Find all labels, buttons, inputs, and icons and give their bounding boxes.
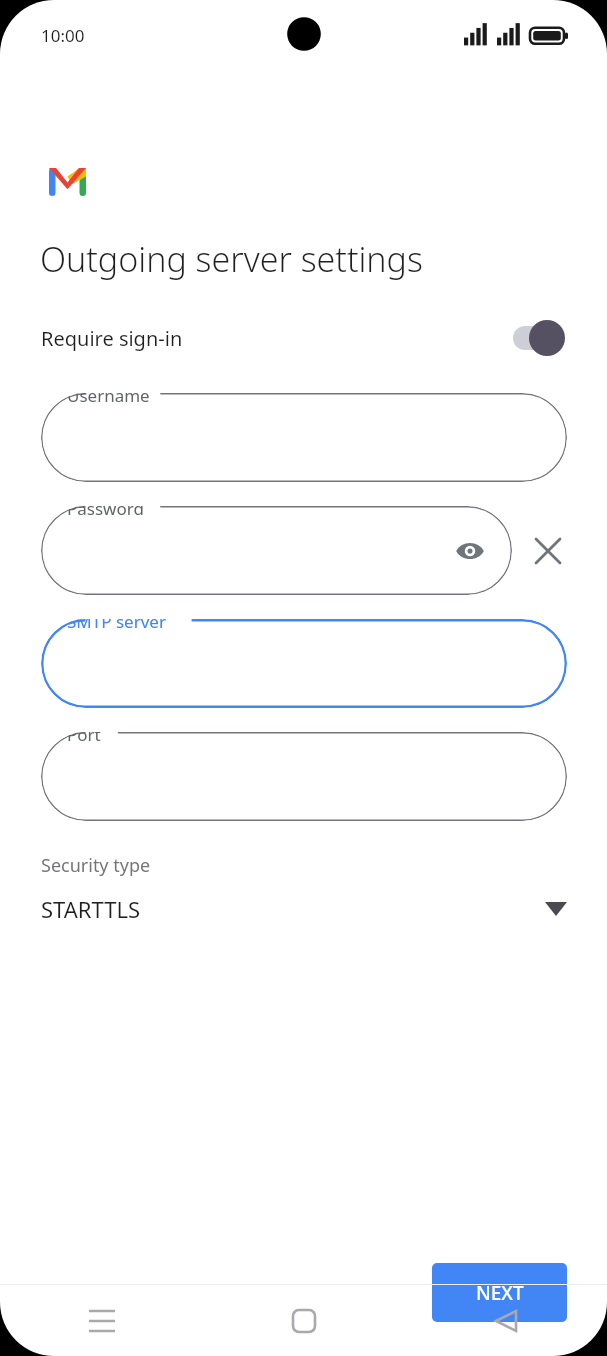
button[interactable]: Password: [41, 506, 512, 595]
button[interactable]: Security type: [0, 853, 607, 924]
button[interactable]: Show password: [448, 529, 492, 573]
button[interactable]: Port: [41, 732, 567, 821]
button[interactable]: Back: [405, 1285, 607, 1356]
staticText: Port: [67, 732, 101, 746]
staticText: Security type: [41, 853, 151, 878]
button[interactable]: Username: [41, 393, 567, 482]
button[interactable]: SMTP server: [41, 619, 567, 708]
staticText: 10:00: [41, 24, 85, 47]
staticText: Outgoing server settings: [40, 236, 423, 282]
staticText: Require sign-in: [41, 325, 509, 352]
button[interactable]: Recents: [0, 1285, 203, 1356]
staticText: NEXT: [476, 1280, 524, 1306]
staticText: STARTTLS: [41, 894, 545, 924]
button[interactable]: NEXT: [432, 1263, 567, 1322]
button[interactable]: Require sign-in: [0, 308, 607, 368]
button[interactable]: Home: [203, 1285, 405, 1356]
staticText: Username: [67, 393, 150, 407]
staticText: Password: [67, 506, 144, 520]
button[interactable]: Clear: [524, 527, 572, 575]
staticText: SMTP server: [67, 619, 166, 633]
